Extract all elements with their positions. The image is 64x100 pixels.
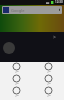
button[interactable]: نص [0,86,32,98]
button[interactable]: نص [32,74,64,86]
staticText: نص [47,94,51,97]
staticText: 12:30 [55,0,63,4]
button[interactable]: نص [32,86,64,98]
staticText: نص [15,82,19,85]
button[interactable]: نص [0,74,32,86]
staticText: نص [47,70,51,73]
staticText: نص [47,82,51,85]
staticText: > [53,34,56,41]
staticText: نص [15,94,19,97]
button[interactable]: Google [2,6,62,14]
button[interactable]: نص [0,62,32,74]
staticText: نص [15,70,19,73]
button[interactable]: نص [32,62,64,74]
staticText: Google [11,8,25,13]
